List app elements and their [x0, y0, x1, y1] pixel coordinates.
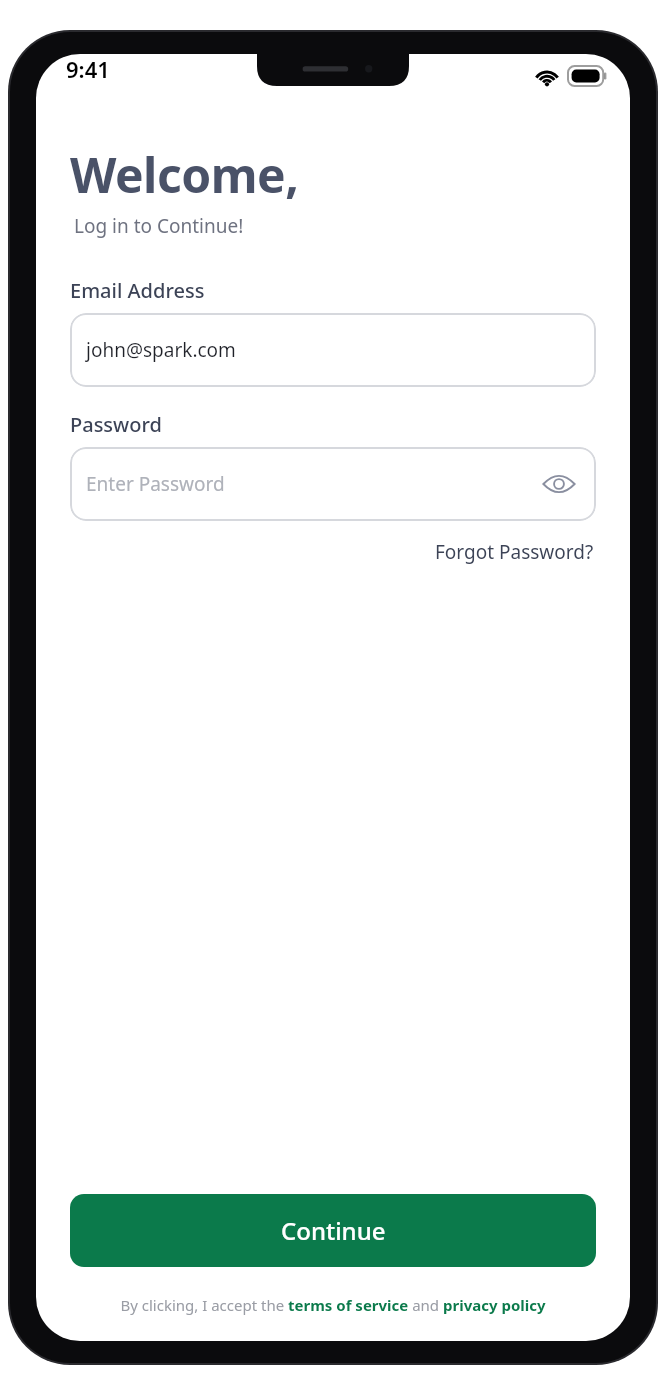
- staticText: Forgot Password?: [435, 539, 594, 565]
- staticText: 9:41: [66, 54, 110, 84]
- button[interactable]: Enter Password: [70, 447, 596, 521]
- staticText: By clicking, I accept the terms of servi…: [120, 1295, 546, 1315]
- button[interactable]: By clicking, I accept the terms of servi…: [120, 1295, 546, 1315]
- button[interactable]: john@spark.com: [70, 313, 596, 387]
- staticText: Password: [70, 411, 162, 438]
- staticText: Email Address: [70, 277, 205, 304]
- staticText: john@spark.com: [86, 337, 236, 363]
- staticText: Enter Password: [86, 471, 225, 497]
- button[interactable]: Continue: [70, 1194, 596, 1267]
- button[interactable]: Show password: [540, 465, 578, 503]
- staticText: Log in to Continue!: [74, 213, 244, 239]
- button[interactable]: Forgot Password?: [433, 537, 596, 567]
- staticText: Welcome,: [70, 142, 299, 207]
- staticText: Continue: [281, 1214, 386, 1247]
